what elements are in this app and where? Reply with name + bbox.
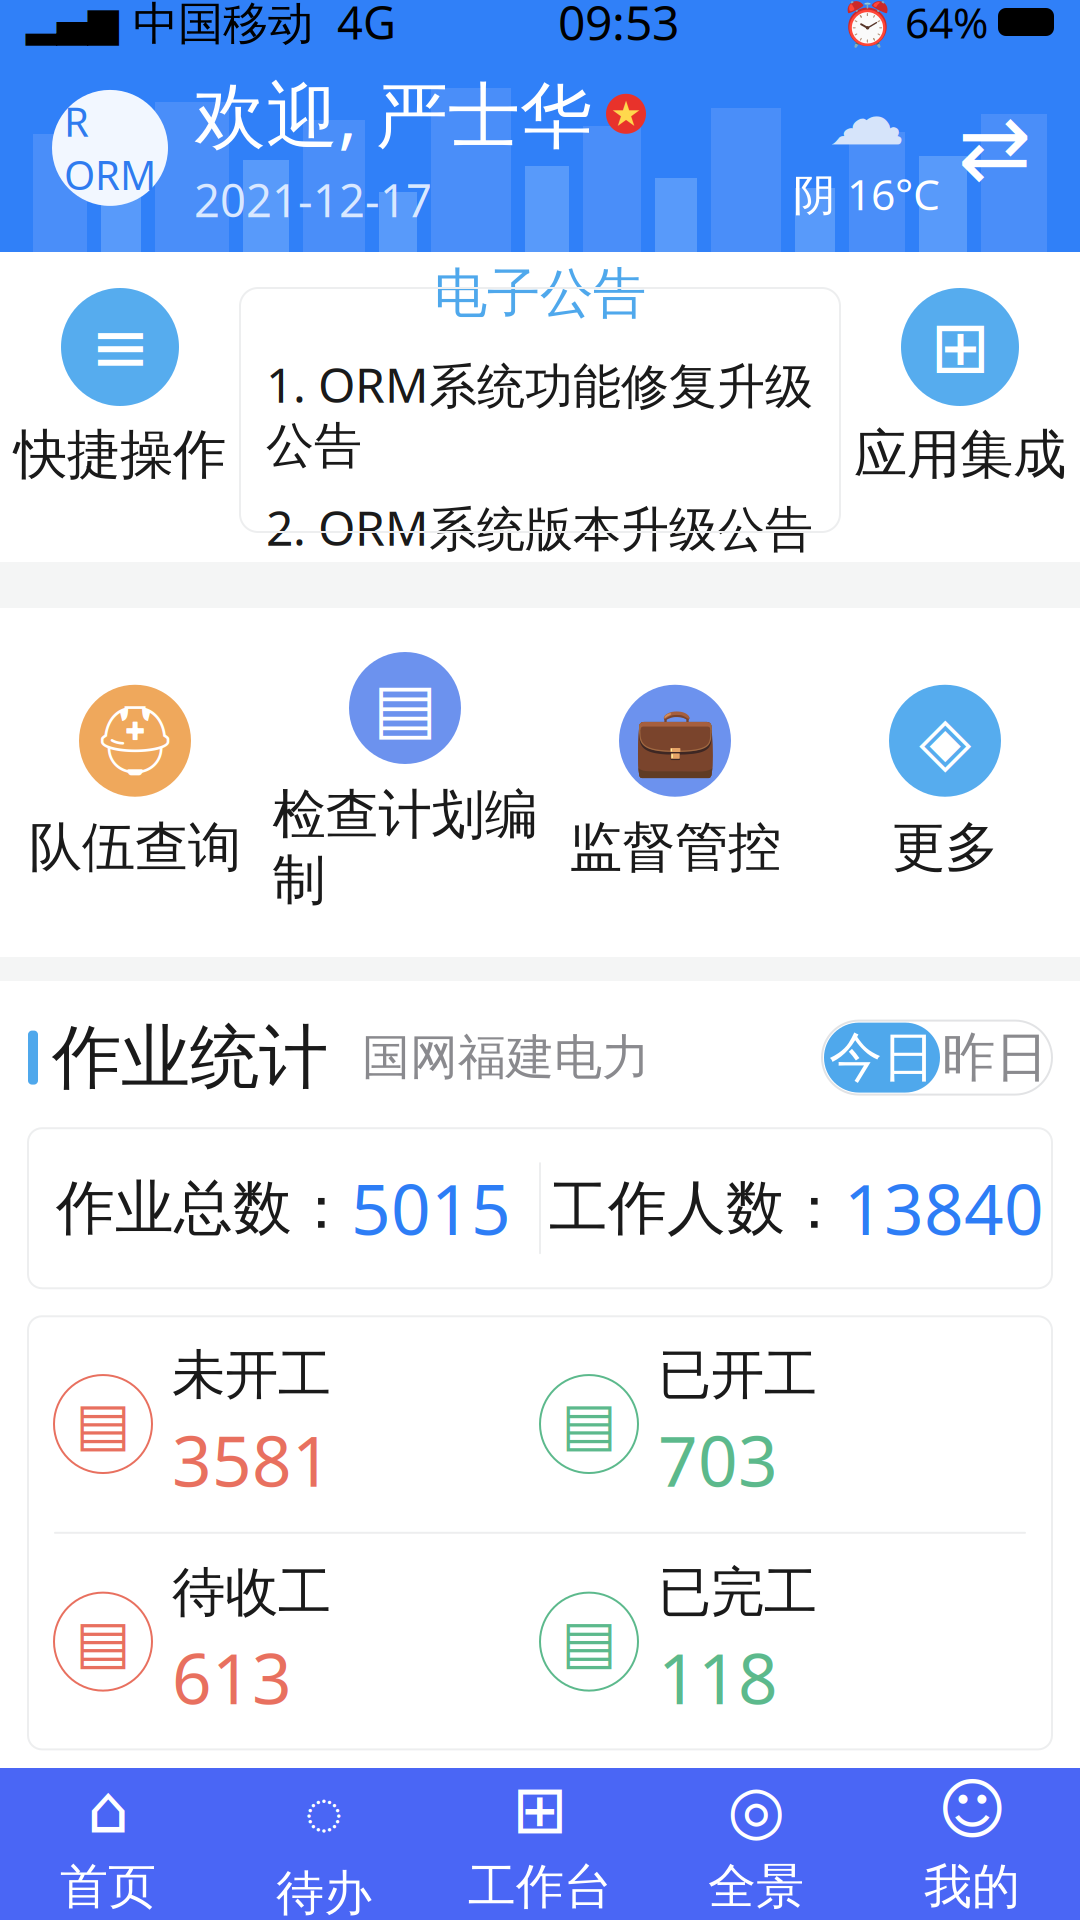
staticText: 中国移动 4G [119, 0, 396, 52]
button[interactable]: ⊞ [432, 1754, 648, 1920]
staticText: ⇄ [958, 98, 1032, 198]
button[interactable]: ≡ [0, 288, 240, 487]
staticText: 更多 [892, 815, 998, 880]
staticText: ▤ [561, 1391, 616, 1457]
staticText: 已完工 [658, 1560, 817, 1625]
staticText: 我的 [924, 1857, 1020, 1916]
staticText: ⛑ [92, 702, 178, 780]
button[interactable]: ⊞ [840, 288, 1080, 487]
button[interactable]: ◈ [810, 685, 1080, 880]
button[interactable]: 昨日 [940, 1023, 1050, 1093]
staticText: R ORM [64, 95, 156, 201]
staticText: ⊞ [512, 1772, 568, 1847]
staticText: ⚡ [552, 1852, 625, 1919]
button[interactable]: 💼 [540, 685, 810, 880]
staticText: 电子公告 [434, 261, 646, 326]
staticText: ≡ [90, 306, 150, 388]
button[interactable]: 今日 [824, 1023, 940, 1093]
button[interactable]: ☺ [864, 1754, 1080, 1920]
staticText: 待办 [276, 1864, 372, 1920]
staticText: 应用集成 [854, 422, 1066, 487]
staticText: ⏰ 64% [841, 0, 988, 50]
staticText: 工作人数： [549, 1172, 844, 1244]
staticText: 检查计划编制 [272, 782, 537, 913]
staticText: 2021-12-17 [194, 170, 432, 230]
staticText: ▂▄▆ [26, 0, 119, 45]
staticText: 首页 [60, 1857, 156, 1916]
staticText: 今日 [829, 1025, 935, 1090]
staticText: ◌ [304, 1765, 344, 1854]
staticText: 全景 [708, 1857, 804, 1916]
staticText: 工作台 [468, 1857, 612, 1916]
staticText: ▤ [75, 1608, 130, 1675]
staticText: 13840 [844, 1162, 1044, 1254]
button[interactable]: ▤ [270, 652, 540, 913]
staticText: 09:53 [558, 0, 679, 54]
staticText: ⚡ [66, 1852, 139, 1919]
staticText: ☁ [828, 74, 905, 161]
staticText: 613 [172, 1631, 292, 1723]
staticText: 昨日 [942, 1025, 1048, 1090]
staticText: ◈ [919, 702, 971, 779]
staticText: 1. ORM系统功能修复升级公告 [266, 352, 813, 475]
button[interactable]: ⛑ [0, 685, 270, 880]
staticText: 快捷操作 [14, 422, 226, 487]
staticText: ◎ [727, 1772, 785, 1847]
staticText: ☺ [937, 1772, 1006, 1847]
staticText: 5015 [351, 1162, 511, 1254]
staticText: ★ [610, 94, 641, 133]
button[interactable]: ◌ [216, 1747, 432, 1920]
staticText: ⌂ [87, 1772, 129, 1847]
staticText: 作业统计 [52, 1015, 328, 1100]
staticText: 国网福建电力 [362, 1028, 650, 1087]
staticText: 监督管控 [569, 815, 781, 880]
staticText: 💼 [632, 702, 717, 780]
staticText: 已开工 [658, 1342, 817, 1408]
staticText: 2. ORM系统版本升级公告 [266, 495, 813, 559]
button[interactable]: ◎ [648, 1754, 864, 1920]
staticText: 118 [658, 1631, 778, 1723]
button[interactable]: ⌂ [0, 1754, 216, 1920]
staticText: 3581 [172, 1414, 332, 1506]
button[interactable]: 刷新 [940, 93, 1050, 203]
staticText: ▤ [75, 1391, 130, 1457]
staticText: 队伍查询 [29, 815, 241, 880]
button[interactable]: 电子公告 [240, 288, 840, 532]
staticText: 4632 [658, 1875, 818, 1920]
staticText: 703 [658, 1414, 778, 1506]
staticText: ▤ [561, 1608, 616, 1675]
staticText: 高风险 [172, 1803, 331, 1869]
staticText: 383 [172, 1875, 292, 1920]
staticText: 作业总数： [56, 1172, 351, 1244]
staticText: ⊞ [930, 306, 990, 388]
staticText: 欢迎, 严士华 [194, 66, 592, 162]
staticText: ▤ [373, 669, 437, 747]
staticText: 低风险 [658, 1803, 817, 1869]
staticText: 待收工 [172, 1560, 331, 1625]
staticText: 未开工 [172, 1342, 331, 1408]
staticText: 阴 16°C [793, 165, 940, 222]
